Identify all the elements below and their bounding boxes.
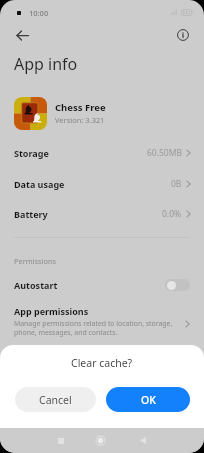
button[interactable]: Cancel bbox=[15, 387, 96, 412]
button[interactable]: Back bbox=[130, 428, 155, 453]
button[interactable]: Battery bbox=[0, 199, 204, 228]
staticText: Version: 3.321 bbox=[55, 115, 105, 125]
staticText: Chess Free bbox=[55, 101, 106, 114]
button[interactable]: App permissions bbox=[0, 302, 204, 340]
button[interactable]: Storage bbox=[0, 138, 204, 167]
staticText: App permissions bbox=[14, 305, 89, 317]
button[interactable]: Recent apps bbox=[48, 428, 73, 453]
staticText: 10:00 bbox=[29, 8, 49, 18]
button[interactable]: Autostart bbox=[0, 271, 204, 298]
staticText: Data usage bbox=[14, 178, 65, 190]
button[interactable]: Home bbox=[88, 428, 113, 453]
staticText: 0.0% bbox=[162, 208, 182, 220]
staticText: Autostart bbox=[14, 279, 58, 291]
staticText: App info bbox=[14, 53, 78, 75]
staticText: 0B bbox=[171, 178, 182, 190]
button[interactable]: OK bbox=[106, 387, 190, 412]
button[interactable]: Data usage bbox=[0, 169, 204, 198]
staticText: Storage bbox=[14, 147, 49, 159]
button[interactable]: Back bbox=[10, 23, 34, 47]
staticText: Battery bbox=[14, 208, 48, 220]
staticText: OK bbox=[141, 393, 156, 407]
staticText: 60.50MB bbox=[147, 147, 182, 159]
button[interactable]: Chess Free bbox=[0, 92, 204, 134]
staticText: Permissions bbox=[14, 256, 57, 266]
button[interactable]: App details bbox=[171, 23, 195, 47]
staticText: Clear cache? bbox=[71, 356, 133, 370]
staticText: Manage permissions related to location, … bbox=[14, 319, 173, 337]
staticText: Cancel bbox=[39, 393, 72, 407]
